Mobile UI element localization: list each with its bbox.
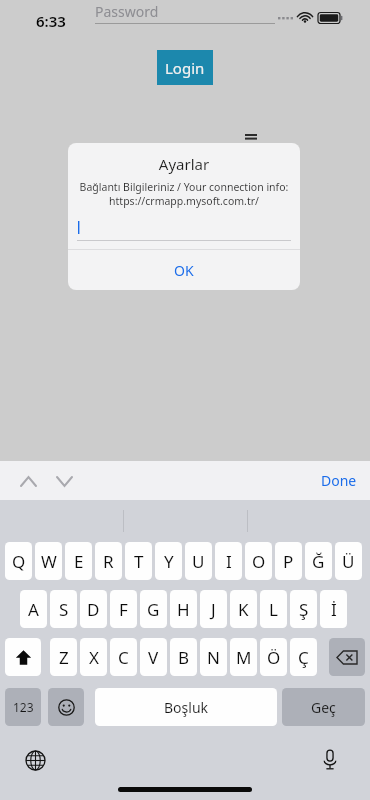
staticText: L (269, 598, 278, 621)
staticText: Boşluk (164, 698, 209, 717)
button[interactable]: Ç (290, 638, 317, 676)
button[interactable]: A (20, 590, 47, 628)
staticText: C (118, 646, 129, 669)
staticText: Login (165, 58, 205, 78)
staticText: D (87, 598, 100, 621)
button[interactable]: I (215, 542, 242, 580)
staticText: B (178, 646, 190, 669)
staticText: I (226, 550, 232, 573)
staticText: T (134, 550, 144, 573)
button[interactable]: Ğ (305, 542, 332, 580)
button[interactable]: X (80, 638, 107, 676)
button[interactable]: H (170, 590, 197, 628)
staticText: F (119, 598, 128, 621)
button[interactable]: Ş (290, 590, 317, 628)
staticText: S (59, 598, 69, 621)
staticText: A (28, 598, 39, 621)
button[interactable]: Y (155, 542, 182, 580)
button[interactable]: T (125, 542, 152, 580)
button[interactable]: Q (5, 542, 32, 580)
button[interactable]: C (110, 638, 137, 676)
button[interactable]: R (95, 542, 122, 580)
staticText: G (147, 598, 160, 621)
button[interactable]: Voice input (315, 745, 345, 775)
button[interactable]: S (50, 590, 77, 628)
button[interactable]: Shift (5, 638, 41, 676)
button[interactable]: Change keyboard language (20, 745, 50, 775)
button[interactable]: Previous field (12, 469, 44, 493)
button[interactable]: Ö (260, 638, 287, 676)
staticText: Z (59, 646, 69, 669)
button[interactable]: K (230, 590, 257, 628)
button[interactable]: V (140, 638, 167, 676)
button[interactable]: Boşluk (95, 688, 277, 726)
staticText: K (238, 598, 249, 621)
staticText: V (148, 646, 159, 669)
staticText: Ç (298, 646, 309, 669)
button[interactable]: N (200, 638, 227, 676)
staticText: OK (174, 261, 194, 280)
staticText: Y (164, 550, 174, 573)
staticText: J (211, 598, 216, 621)
button[interactable]: G (140, 590, 167, 628)
staticText: U (192, 550, 205, 573)
button[interactable]: P (275, 542, 302, 580)
staticText: X (89, 646, 99, 669)
staticText: Ayarlar (68, 154, 300, 174)
button[interactable]: E (65, 542, 92, 580)
staticText: E (74, 550, 84, 573)
staticText: Ö (267, 646, 281, 669)
button[interactable]: B (170, 638, 197, 676)
staticText: Bağlantı Bilgileriniz / Your connection … (75, 180, 293, 208)
staticText: M (236, 646, 252, 669)
button[interactable]: W (35, 542, 62, 580)
staticText: P (283, 550, 294, 573)
staticText: Done (321, 471, 357, 490)
button[interactable]: U (185, 542, 212, 580)
staticText: Geç (311, 698, 336, 717)
staticText: Ş (299, 598, 309, 621)
staticText: W (41, 550, 57, 573)
staticText: 6:33 (36, 11, 66, 31)
button[interactable]: J (200, 590, 227, 628)
staticText: N (207, 646, 220, 669)
staticText: Ğ (312, 550, 325, 573)
button[interactable]: Geç (282, 688, 365, 726)
button[interactable]: OK (68, 250, 300, 290)
button[interactable]: Z (50, 638, 77, 676)
staticText: Ü (342, 550, 355, 573)
button[interactable]: İ (320, 590, 347, 628)
button[interactable]: Backspace (329, 638, 365, 676)
staticText: H (177, 598, 190, 621)
button[interactable]: O (245, 542, 272, 580)
button[interactable]: Done (321, 471, 357, 490)
staticText: O (252, 550, 266, 573)
button[interactable] (77, 219, 291, 243)
button[interactable]: Ü (335, 542, 362, 580)
staticText: R (103, 550, 114, 573)
staticText: İ (331, 598, 337, 621)
button[interactable]: Emoji (48, 688, 84, 726)
button[interactable]: Next field (48, 469, 80, 493)
staticText: 123 (13, 699, 34, 715)
button[interactable]: Login (157, 50, 213, 85)
staticText: Q (12, 550, 26, 573)
staticText: Password (95, 2, 159, 21)
button[interactable]: D (80, 590, 107, 628)
button[interactable]: 123 (5, 688, 41, 726)
button[interactable]: L (260, 590, 287, 628)
button[interactable]: M (230, 638, 257, 676)
button[interactable]: F (110, 590, 137, 628)
